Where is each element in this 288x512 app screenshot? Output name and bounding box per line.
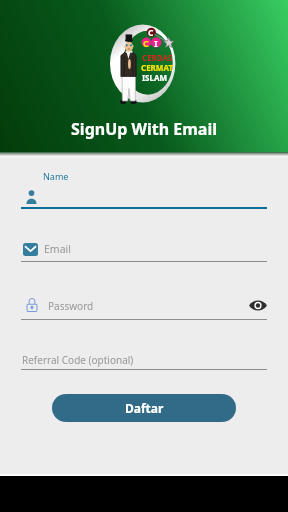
button[interactable]: Email <box>14 240 274 266</box>
staticText: C <box>148 27 154 37</box>
button[interactable]: Name <box>14 166 274 214</box>
staticText: SignUp With Email <box>71 118 217 140</box>
staticText: CERDAS <box>142 52 173 63</box>
staticText: ISLAM <box>142 72 168 83</box>
staticText: Referral Code (optional) <box>22 353 134 367</box>
button[interactable]: Referral Code (optional) <box>14 352 274 374</box>
button[interactable]: Password <box>14 295 274 321</box>
button[interactable]: Toggle password visibility <box>246 296 270 314</box>
staticText: Name <box>43 170 69 182</box>
staticText: Email <box>44 242 71 256</box>
staticText: Password <box>48 299 94 313</box>
staticText: CERMAT <box>141 62 173 73</box>
button[interactable]: Daftar <box>52 394 236 422</box>
staticText: C <box>143 37 149 47</box>
staticText: Daftar <box>125 400 164 416</box>
staticText: I <box>154 37 158 47</box>
